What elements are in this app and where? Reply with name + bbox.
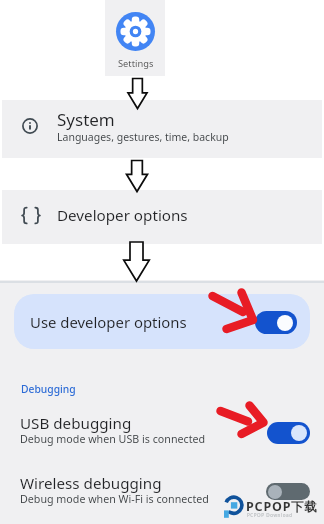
staticText: PCPOP下载	[246, 498, 318, 515]
staticText: Wireless debugging	[20, 473, 162, 494]
button[interactable]: Developer options	[2, 190, 322, 244]
staticText: Developer options	[57, 205, 188, 226]
staticText: PCPOP Download	[247, 512, 293, 518]
button[interactable]: Use developer options	[14, 294, 310, 349]
staticText: Debugging	[21, 382, 76, 396]
button[interactable]: Toggle on	[267, 422, 310, 444]
button[interactable]: Settings	[105, 0, 165, 76]
staticText: USB debugging	[20, 413, 132, 434]
staticText: System	[57, 108, 115, 131]
button[interactable]: Toggle off	[266, 483, 310, 500]
button[interactable]: System	[2, 100, 322, 158]
staticText: Debug mode when Wi-Fi is connected	[20, 492, 209, 507]
staticText: Debug mode when USB is connected	[20, 432, 206, 447]
button[interactable]: Toggle on	[255, 311, 297, 334]
staticText: Settings	[118, 57, 154, 70]
staticText: Languages, gestures, time, backup	[57, 130, 229, 144]
staticText: Use developer options	[30, 312, 187, 332]
